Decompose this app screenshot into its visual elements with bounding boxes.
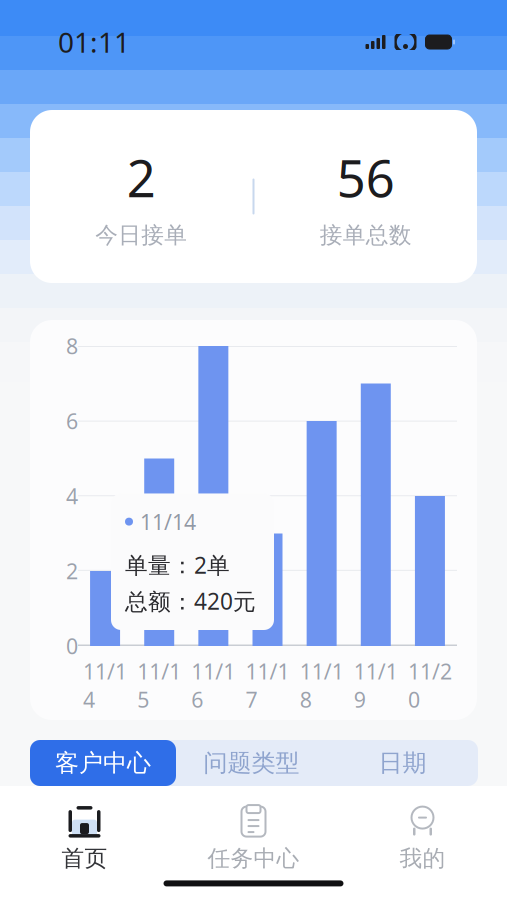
staticText: 总额：420元 [125, 586, 256, 616]
button[interactable]: 首页 [0, 798, 169, 880]
staticText: 任务中心 [207, 845, 299, 872]
staticText: 首页 [61, 845, 107, 872]
staticText: 11/20 [408, 657, 452, 714]
staticText: 11/15 [137, 657, 181, 714]
button[interactable]: 问题类型 [176, 740, 327, 786]
staticText: 11/19 [354, 657, 398, 714]
staticText: 接单总数 [320, 221, 412, 249]
staticText: 6 [66, 407, 78, 435]
staticText: 问题类型 [203, 748, 299, 778]
staticText: 11/16 [191, 657, 235, 714]
staticText: 2 [66, 557, 78, 585]
staticText: 8 [66, 332, 78, 360]
staticText: 今日接单 [95, 221, 187, 249]
staticText: 11/18 [300, 657, 344, 714]
staticText: 01:11 [58, 23, 130, 61]
staticText: 11/14 [140, 507, 196, 536]
staticText: 日期 [378, 748, 426, 778]
staticText: 单量：2单 [125, 550, 230, 580]
staticText: 11/14 [83, 657, 127, 714]
staticText: 我的 [399, 845, 445, 872]
staticText: 4 [66, 482, 78, 510]
staticText: 客户中心 [55, 748, 151, 778]
staticText: 0 [66, 632, 78, 660]
button[interactable]: 客户中心 [30, 740, 176, 786]
button[interactable]: 我的 [338, 798, 507, 880]
button[interactable]: 任务中心 [169, 798, 338, 880]
staticText: 11/17 [245, 657, 289, 714]
button[interactable]: 日期 [327, 740, 478, 786]
staticText: 56 [337, 144, 395, 211]
staticText: 2 [127, 144, 156, 211]
